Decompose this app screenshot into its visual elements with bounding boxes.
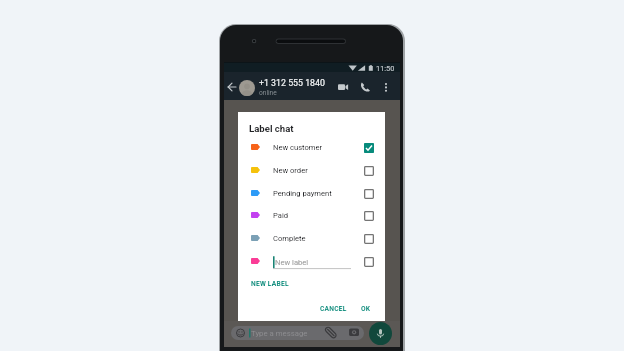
button[interactable]: Voice call <box>360 82 371 92</box>
button[interactable]: Complete <box>238 227 385 250</box>
button[interactable]: Back <box>226 82 237 92</box>
staticText: CANCEL <box>320 305 347 313</box>
button[interactable]: OK <box>357 302 375 316</box>
button[interactable]: NEW LABEL <box>247 277 293 291</box>
staticText: Complete <box>273 234 306 243</box>
staticText: Label chat <box>249 123 294 134</box>
button[interactable]: Pending payment <box>238 182 385 205</box>
staticText: NEW LABEL <box>251 280 289 288</box>
staticText: 11:50 <box>376 64 395 73</box>
button[interactable]: Record voice message <box>369 322 392 345</box>
staticText: New customer <box>273 143 323 152</box>
button[interactable]: New order <box>238 159 385 182</box>
staticText: OK <box>361 305 371 313</box>
button[interactable]: Type a message <box>231 326 364 340</box>
staticText: Type a message <box>251 329 308 338</box>
staticText: Paid <box>273 211 289 220</box>
button[interactable]: Contact photo <box>239 80 255 96</box>
button[interactable]: More options <box>382 82 390 93</box>
staticText: +1 312 555 1840 <box>259 78 325 88</box>
button[interactable]: New label <box>238 250 385 273</box>
button[interactable]: CANCEL <box>316 302 351 316</box>
staticText: New order <box>273 166 308 175</box>
staticText: online <box>259 89 277 97</box>
button[interactable]: New customer <box>238 136 385 159</box>
button[interactable]: Paid <box>238 204 385 227</box>
staticText: New label <box>275 258 309 267</box>
button[interactable]: Video call <box>336 80 350 92</box>
staticText: Pending payment <box>273 189 332 198</box>
